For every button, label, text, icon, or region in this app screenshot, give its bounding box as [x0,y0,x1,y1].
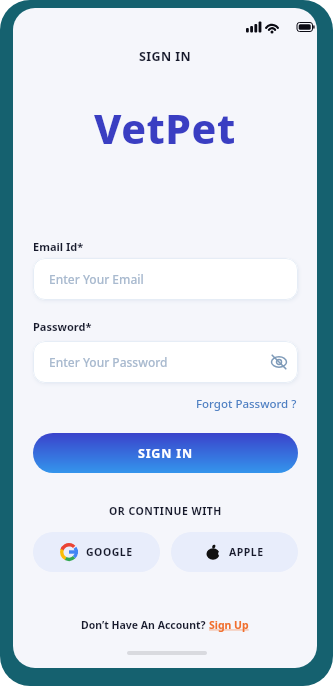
staticText: SIGN IN [138,445,193,462]
staticText: Email Id* [33,239,84,254]
button[interactable]: APPLE [171,532,298,572]
button[interactable]: Don’t Have An Account? [81,618,249,632]
staticText: VetPet [94,100,236,156]
staticText: SIGN IN [139,48,192,65]
staticText: Don’t Have An Account? [81,618,209,632]
staticText: Enter Your Password [49,354,168,370]
button[interactable]: Forgot Password ? [196,396,297,412]
button[interactable]: Enter Your Email [33,258,298,300]
staticText: Sign Up [209,618,249,632]
staticText: APPLE [229,545,264,559]
staticText: Enter Your Email [49,271,144,287]
staticText: GOOGLE [86,545,133,559]
staticText: OR CONTINUE WITH [109,504,222,518]
staticText: Password* [33,319,92,334]
button[interactable]: SIGN IN [33,433,298,473]
button[interactable]: GOOGLE [33,532,160,572]
button[interactable]: Enter Your Password [33,341,298,383]
